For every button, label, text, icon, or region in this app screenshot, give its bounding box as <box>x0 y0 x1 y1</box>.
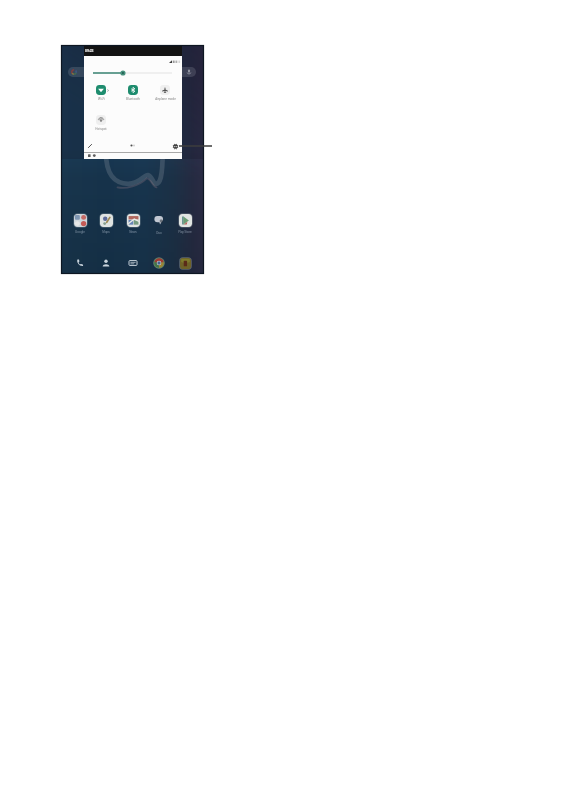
button[interactable]: Airplane mode <box>150 85 180 101</box>
staticText: Play Store <box>178 230 192 234</box>
button[interactable]: Google <box>67 214 93 234</box>
button[interactable]: Bluetooth <box>118 85 148 101</box>
staticText: 09:23 <box>85 48 94 52</box>
staticText: Google <box>75 230 85 234</box>
button[interactable]: Maps <box>93 214 119 234</box>
button[interactable]: Duo <box>146 215 172 235</box>
button[interactable]: Hotspot <box>86 115 116 131</box>
button[interactable]: App <box>146 257 172 269</box>
button[interactable]: App <box>172 258 198 269</box>
button[interactable]: App <box>67 258 93 268</box>
button[interactable]: Settings <box>170 141 180 151</box>
staticText: Airplane mode <box>155 97 176 101</box>
button[interactable]: Search <box>68 67 196 77</box>
staticText: Maps <box>102 230 110 234</box>
button[interactable]: News <box>120 214 146 234</box>
staticText: Bluetooth <box>126 97 140 101</box>
button[interactable]: Edit <box>85 141 95 151</box>
button[interactable]: Wi-Fi <box>86 85 116 101</box>
staticText: Duo <box>156 231 162 235</box>
button[interactable]: App <box>93 258 119 268</box>
button[interactable]: App <box>120 258 146 268</box>
staticText: Hotspot <box>95 127 107 131</box>
staticText: Wi-Fi <box>98 97 105 101</box>
staticText: News <box>129 230 137 234</box>
button[interactable]: Play Store <box>172 214 198 234</box>
